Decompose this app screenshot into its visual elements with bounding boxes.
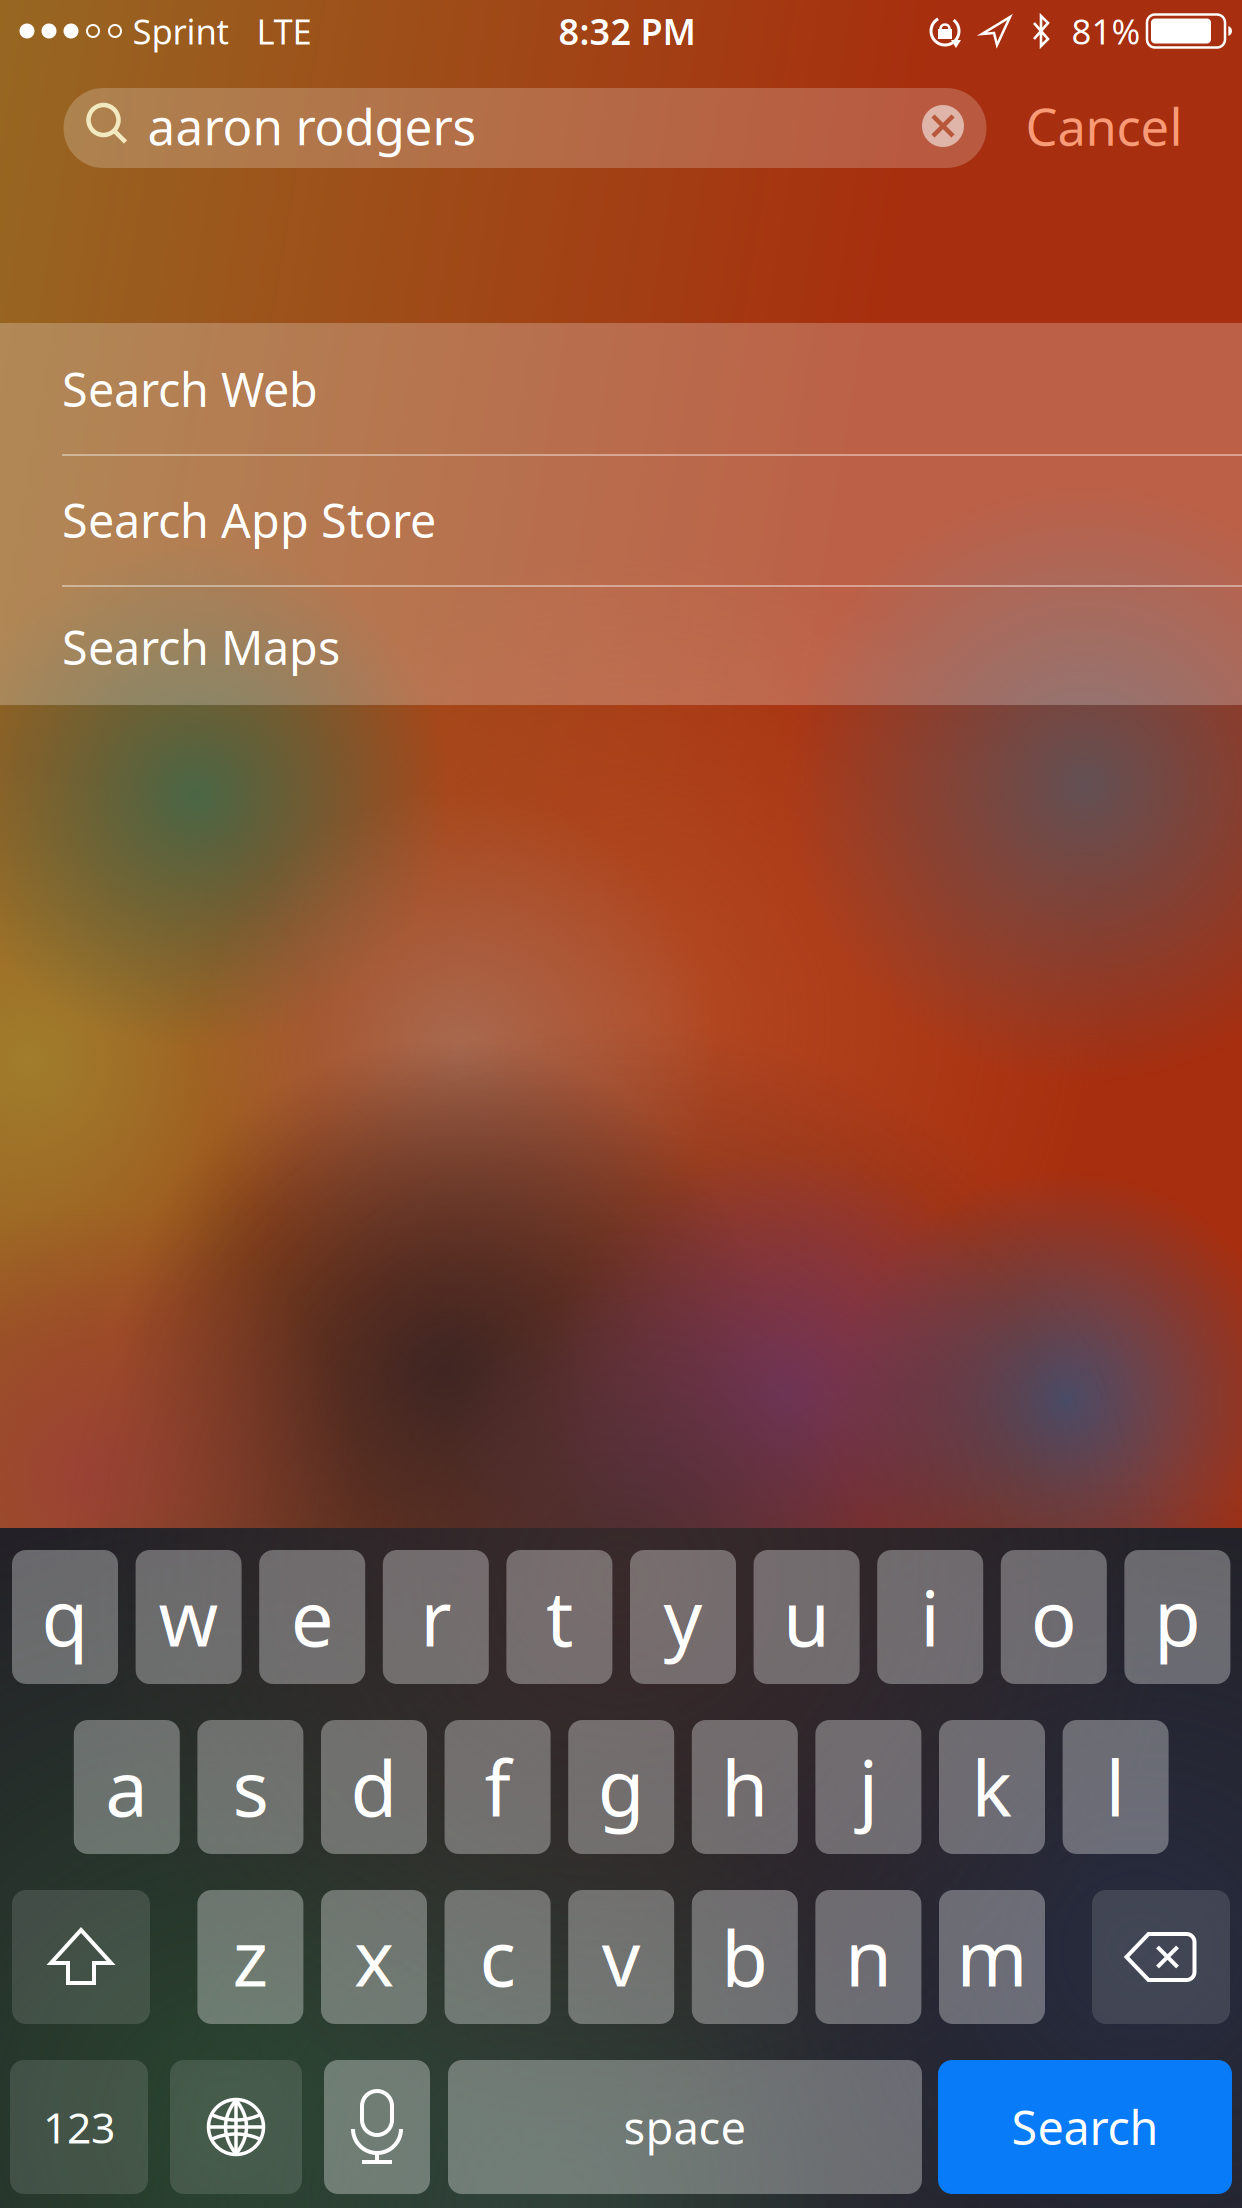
staticText: m [956,1906,1027,2007]
button[interactable]: Dictate [324,2060,430,2194]
button[interactable]: Search Maps [62,587,1242,706]
button[interactable]: a [74,1720,180,1854]
button[interactable]: Clear text [922,105,964,147]
button[interactable]: Cancel [1025,92,1182,160]
staticText: h [721,1736,768,1837]
staticText: l [1106,1736,1126,1837]
button[interactable]: l [1063,1720,1169,1854]
button[interactable]: x [321,1890,427,2024]
staticText: k [971,1736,1012,1837]
staticText: 8:32 PM [558,7,695,55]
staticText: b [721,1906,768,2007]
staticText: d [350,1736,397,1837]
staticText: e [291,1566,334,1667]
staticText: v [602,1906,641,2007]
staticText: a [105,1736,148,1837]
staticText: s [232,1736,268,1837]
staticText: n [845,1906,892,2007]
button[interactable]: m [939,1890,1045,2024]
button[interactable]: 123 [10,2060,148,2194]
staticText: y [663,1566,702,1667]
staticText: aaron rodgers [147,93,476,159]
staticText: g [598,1736,645,1837]
button[interactable]: f [445,1720,551,1854]
button[interactable]: z [197,1890,303,2024]
button[interactable]: Search [938,2060,1232,2194]
button[interactable]: c [445,1890,551,2024]
button[interactable]: b [692,1890,798,2024]
staticText: Search Web [62,358,318,420]
button[interactable]: space [448,2060,922,2194]
button[interactable]: r [383,1550,489,1684]
button[interactable]: Next keyboard [170,2060,302,2194]
staticText: r [420,1566,451,1667]
staticText: space [623,2097,746,2157]
staticText: 81% [1071,8,1140,54]
staticText: Sprint [132,8,229,54]
staticText: j [858,1736,878,1837]
button[interactable]: h [692,1720,798,1854]
button[interactable]: k [939,1720,1045,1854]
button[interactable]: n [815,1890,921,2024]
staticText: Search App Store [62,489,436,551]
staticText: t [546,1566,573,1667]
staticText: p [1154,1566,1201,1667]
button[interactable]: p [1124,1550,1230,1684]
staticText: u [783,1566,830,1667]
button[interactable]: aaron rodgers [63,88,986,168]
staticText: Search Maps [62,616,340,678]
button[interactable]: t [506,1550,612,1684]
staticText: Cancel [1025,92,1182,160]
button[interactable]: d [321,1720,427,1854]
staticText: q [41,1566,88,1667]
staticText: 123 [43,2099,115,2155]
button[interactable]: o [1001,1550,1107,1684]
button[interactable]: w [136,1550,242,1684]
button[interactable]: v [568,1890,674,2024]
button[interactable]: Shift [12,1890,150,2024]
staticText: i [920,1566,940,1667]
staticText: c [480,1906,516,2007]
button[interactable]: Search App Store [62,454,1242,585]
button[interactable]: j [815,1720,921,1854]
staticText: w [159,1566,219,1667]
button[interactable]: e [259,1550,365,1684]
staticText: z [232,1906,268,2007]
staticText: f [485,1736,511,1837]
staticText: Search [1011,2096,1158,2158]
staticText: LTE [256,8,311,54]
button[interactable]: q [12,1550,118,1684]
button[interactable]: Search Web [62,323,1242,455]
staticText: o [1031,1566,1077,1667]
staticText: x [354,1906,394,2007]
button[interactable]: u [754,1550,860,1684]
button[interactable]: g [568,1720,674,1854]
button[interactable]: Delete [1092,1890,1230,2024]
button[interactable]: s [197,1720,303,1854]
button[interactable]: i [877,1550,983,1684]
button[interactable]: y [630,1550,736,1684]
